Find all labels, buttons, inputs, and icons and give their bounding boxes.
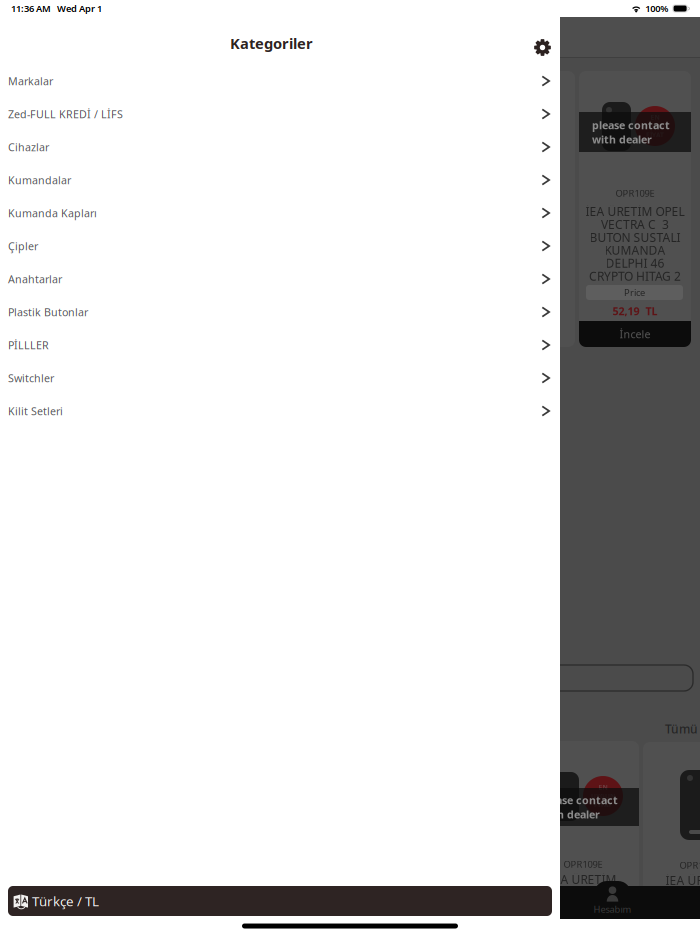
staticText: Markalar [8,74,53,88]
staticText: İncele [619,327,650,341]
staticText: Switchler [8,371,54,385]
staticText: UYGUN [591,792,615,800]
staticText: 11:36 AM [11,2,51,15]
button[interactable]: Çipler [0,229,560,262]
button[interactable]: PİLLLER [0,328,560,361]
staticText: Kilit Setleri [8,404,63,418]
staticText: BUTON SUSTALI [589,229,680,245]
staticText: please contact [540,793,618,807]
staticText: OPR109E [563,858,602,870]
button[interactable]: Türkçe / TL [8,886,552,916]
button[interactable]: Anahtarlar [0,262,560,295]
button[interactable]: Settings [525,31,560,64]
staticText: 52,19 TL [612,304,657,318]
staticText: OPR109E [679,859,700,871]
staticText: with dealer [540,807,600,821]
staticText: Çipler [8,239,38,253]
staticText: DELPHİ 46 [605,255,664,271]
staticText: FİYAT [594,800,612,809]
staticText: İEA ÜRETİM [665,872,700,888]
button[interactable]: Kumandalar [0,163,560,196]
staticText: Anahtarlar [8,272,62,286]
staticText: CRYPTO HİTAG 2 [589,268,681,284]
staticText: Tümü [665,721,698,737]
button[interactable]: Zed-FULL KREDİ / LİFS [0,97,560,130]
staticText: Price [624,286,645,299]
staticText: Kumanda Kapları [8,206,97,220]
button[interactable]: Kilit Setleri [0,394,560,427]
button[interactable]: Kumanda Kapları [0,196,560,229]
button[interactable]: Cihazlar [0,130,560,163]
staticText: Cihazlar [8,140,49,154]
staticText: VECTRA C 3 [601,216,669,232]
staticText: PİLLLER [8,338,49,352]
staticText: İEA ÜRETİM [549,871,616,887]
staticText: Hesabım [593,903,631,915]
staticText: UYGUN [643,122,667,130]
button[interactable]: Markalar [0,64,560,97]
staticText: OPR109E [615,187,654,199]
staticText: Kategoriler [230,33,313,53]
staticText: Zed-FULL KREDİ / LİFS [8,107,123,121]
button[interactable]: Switchler [0,361,560,394]
staticText: 100% [645,2,668,15]
staticText: Plastik Butonlar [8,305,88,319]
button[interactable]: Plastik Butonlar [0,295,560,328]
staticText: Türkçe / TL [32,892,99,910]
staticText: EN [598,783,607,792]
staticText: Wed Apr 1 [57,2,102,15]
staticText: İEA ÜRETİM OPEL [585,203,684,219]
staticText: EN [650,113,659,122]
staticText: Kumandalar [8,173,71,187]
staticText: with dealer [592,132,652,146]
staticText: please contact [592,118,670,132]
staticText: FİYAT [646,130,664,139]
staticText: KUMANDA [604,242,665,258]
